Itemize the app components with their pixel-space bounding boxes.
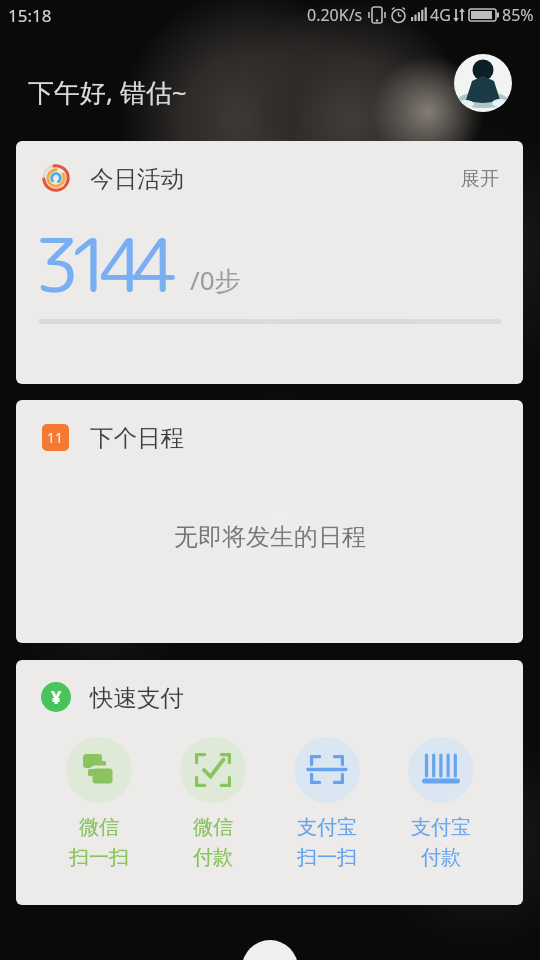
- staticText: 85%: [502, 4, 534, 26]
- staticText: 支付宝 扫一扫: [283, 815, 371, 870]
- staticText: 11: [47, 428, 64, 447]
- staticText: 3144: [34, 212, 166, 315]
- staticText: 0.20K/s: [307, 4, 363, 26]
- button[interactable]: 支付宝 付款: [397, 737, 485, 870]
- staticText: 今日活动: [90, 164, 184, 194]
- button[interactable]: [242, 940, 298, 960]
- button[interactable]: 微信 扫一扫: [55, 737, 143, 870]
- button[interactable]: 今日活动: [16, 141, 523, 384]
- staticText: 下个日程: [90, 423, 184, 453]
- button[interactable]: 11: [16, 400, 523, 643]
- button[interactable]: ¥: [16, 660, 523, 905]
- staticText: 微信 扫一扫: [55, 815, 143, 870]
- staticText: ¥: [51, 685, 62, 710]
- staticText: 微信 付款: [169, 815, 257, 870]
- staticText: /0步: [190, 262, 241, 298]
- staticText: 4G: [430, 4, 451, 26]
- button[interactable]: 支付宝 扫一扫: [283, 737, 371, 870]
- staticText: 下午好, 错估~: [28, 74, 187, 110]
- button[interactable]: 微信 付款: [169, 737, 257, 870]
- staticText: 15:18: [8, 4, 52, 27]
- staticText: 展开: [461, 167, 499, 191]
- staticText: 支付宝 付款: [397, 815, 485, 870]
- button[interactable]: 展开: [457, 163, 503, 195]
- button[interactable]: [454, 54, 512, 112]
- staticText: 无即将发生的日程: [174, 522, 366, 552]
- staticText: 快速支付: [90, 683, 184, 713]
